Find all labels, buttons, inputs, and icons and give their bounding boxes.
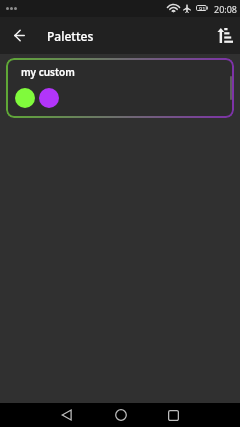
staticText: 91 — [199, 5, 206, 11]
staticText: Palettes — [47, 28, 94, 44]
button[interactable]: my custom — [6, 58, 234, 118]
button[interactable]: Home — [94, 403, 147, 427]
button[interactable]: Back — [40, 403, 93, 427]
button[interactable]: Sort — [209, 17, 240, 54]
staticText: 20:08 — [214, 3, 238, 15]
button[interactable]: Navigate up — [0, 17, 38, 54]
staticText: my custom — [21, 65, 75, 79]
button[interactable]: Recent apps — [147, 403, 200, 427]
